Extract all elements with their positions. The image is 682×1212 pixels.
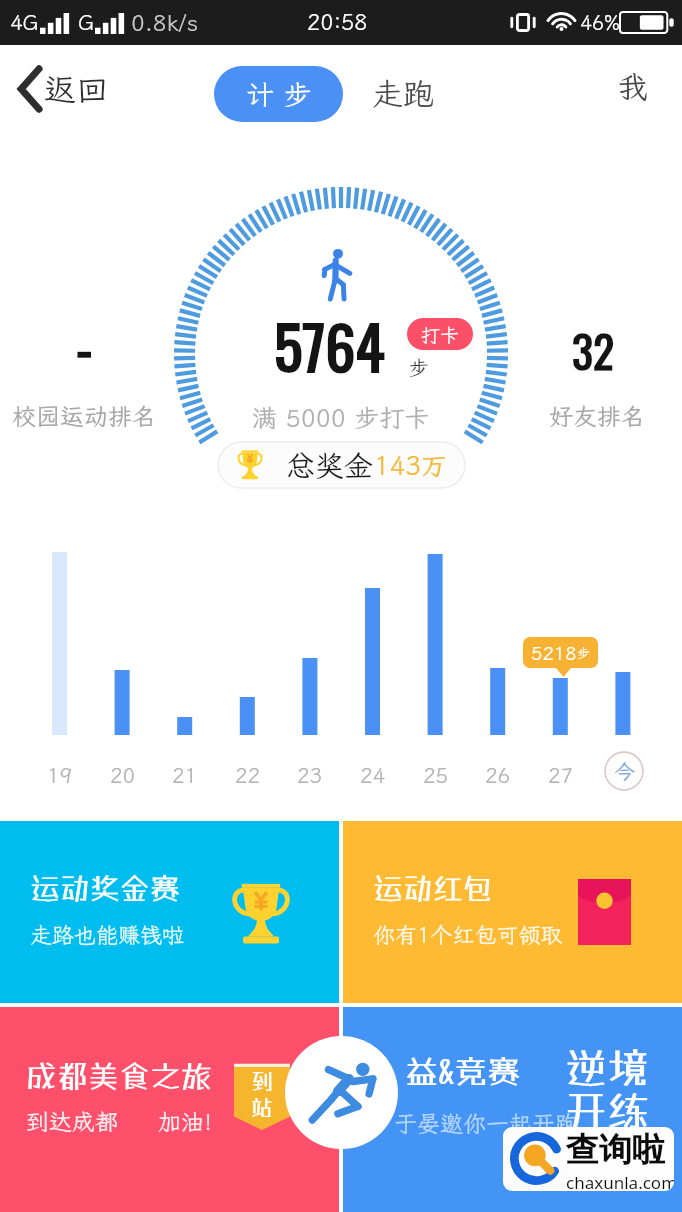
button[interactable]: 返回 <box>9 60 115 118</box>
staticText: 加油! <box>158 1106 213 1136</box>
staticText: 22 <box>235 761 261 789</box>
staticText: 总奖金 <box>286 446 374 484</box>
staticText: 于晏邀你一起开跑 <box>394 1108 578 1138</box>
staticText: 走路也能赚钱啦 <box>30 920 185 949</box>
staticText: 运动奖金赛 <box>30 871 180 906</box>
staticText: 益&竞赛 <box>405 1052 521 1091</box>
staticText: 满 5000 步打卡 <box>252 401 430 434</box>
staticText: 到达成都 <box>26 1106 118 1136</box>
staticText: 23 <box>297 761 323 789</box>
button[interactable]: 运动红包 <box>343 821 682 1003</box>
staticText: 返回 <box>44 68 109 110</box>
button[interactable]: 打卡 <box>407 318 473 350</box>
staticText: 我 <box>617 66 648 107</box>
staticText: 站 <box>251 1094 274 1120</box>
staticText: 走跑 <box>372 73 434 114</box>
staticText: 开练 <box>565 1086 650 1136</box>
staticText: 20 <box>110 761 136 789</box>
staticText: 25 <box>423 761 449 789</box>
staticText: 0.8k/s <box>131 7 199 37</box>
staticText: 步 <box>409 354 429 380</box>
button[interactable]: 益&竞赛 <box>343 1007 682 1212</box>
button[interactable]: 校园运动排名 <box>12 400 156 432</box>
staticText: 26 <box>485 761 511 789</box>
staticText: 运动红包 <box>373 871 493 906</box>
staticText: 打卡 <box>421 322 460 347</box>
staticText: 今 <box>614 757 635 785</box>
staticText: 5764 <box>274 300 385 389</box>
button[interactable]: 成都美食之旅 <box>0 1007 339 1212</box>
staticText: 到 <box>251 1068 274 1094</box>
staticText: 27 <box>548 761 574 789</box>
staticText: 24 <box>360 761 386 789</box>
staticText: 5218 <box>531 640 577 665</box>
staticText: G <box>78 8 94 36</box>
staticText: 查询啦 <box>566 1129 665 1171</box>
staticText: 4G <box>10 8 39 36</box>
button[interactable]: 计 步 <box>214 66 343 122</box>
staticText: 逆境 <box>565 1043 650 1093</box>
staticText: chaxunla.com <box>566 1171 674 1191</box>
button[interactable]: Start running <box>285 1036 398 1149</box>
button[interactable]: 32 <box>572 318 615 383</box>
staticText: 21 <box>172 761 198 789</box>
staticText: 计 步 <box>246 76 312 113</box>
staticText: 143万 <box>374 448 447 482</box>
button[interactable]: 运动奖金赛 <box>0 821 339 1003</box>
button[interactable]: 今 <box>604 751 644 791</box>
staticText: 19 <box>47 761 73 789</box>
button[interactable]: 好友排名 <box>549 400 645 432</box>
staticText: 成都美食之旅 <box>26 1058 212 1095</box>
button[interactable]: 走跑 <box>366 67 440 120</box>
staticText: 你有1个红包可领取 <box>373 920 563 949</box>
button[interactable]: 总奖金 <box>217 441 466 489</box>
staticText: 46% <box>580 9 620 35</box>
staticText: 20:58 <box>307 7 368 36</box>
button[interactable]: 我 <box>611 60 654 113</box>
button[interactable]: - <box>76 307 93 387</box>
staticText: 步 <box>577 645 591 662</box>
